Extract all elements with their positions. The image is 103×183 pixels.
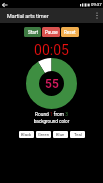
staticText: 00:05 <box>0 42 103 58</box>
button[interactable]: More options <box>91 8 103 23</box>
button[interactable]: Teal <box>70 131 85 138</box>
staticText: 09:37 <box>91 2 102 7</box>
staticText: background color <box>0 119 103 124</box>
button[interactable]: Blue <box>53 131 68 138</box>
button[interactable]: Green <box>36 131 51 138</box>
staticText: Reset <box>64 30 76 35</box>
staticText: Green <box>38 132 49 137</box>
staticText: Start <box>28 30 38 35</box>
staticText: Martial arts timer <box>7 13 49 19</box>
button[interactable]: Start <box>24 27 41 37</box>
button[interactable]: Pause <box>42 27 60 37</box>
button[interactable]: Black <box>19 131 34 138</box>
staticText: 55 <box>45 77 59 91</box>
staticText: Black <box>21 132 32 137</box>
staticText: Teal <box>74 132 82 137</box>
staticText: Blue <box>56 132 65 137</box>
other: Back <box>1 1 9 9</box>
button[interactable]: Reset <box>61 27 79 37</box>
staticText: Pause <box>45 30 58 35</box>
staticText: Round 1 from 3 <box>0 112 103 118</box>
